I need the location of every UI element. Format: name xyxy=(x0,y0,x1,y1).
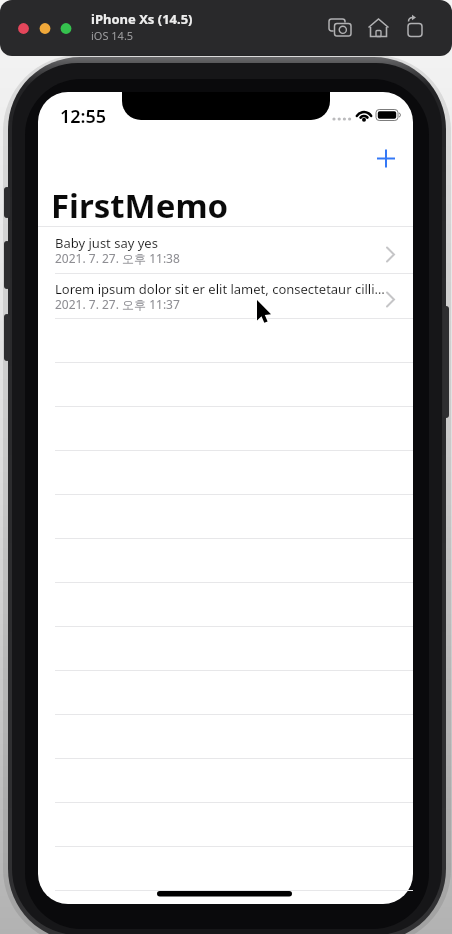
staticText: FirstMemo xyxy=(51,183,229,228)
staticText: 2021. 7. 27. 오후 11:37 xyxy=(55,296,180,312)
staticText: 2021. 7. 27. 오후 11:38 xyxy=(55,250,180,266)
staticText: iPhone Xs (14.5) xyxy=(91,10,193,28)
button[interactable]: Baby just say yes xyxy=(38,227,413,273)
button[interactable] xyxy=(371,143,401,173)
button[interactable]: Lorem ipsum dolor sit er elit lamet, con… xyxy=(38,274,413,318)
staticText: Lorem ipsum dolor sit er elit lamet, con… xyxy=(55,280,390,297)
staticText: 12:55 xyxy=(60,104,107,129)
staticText: Baby just say yes xyxy=(55,234,158,252)
staticText: iOS 14.5 xyxy=(91,28,134,43)
